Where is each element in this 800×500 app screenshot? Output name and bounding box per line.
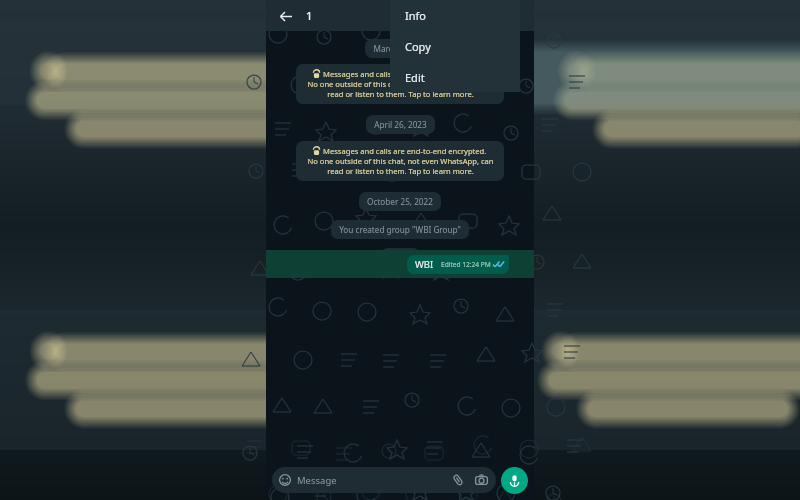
staticText: Copy <box>405 39 431 54</box>
button[interactable]: Message <box>279 467 489 493</box>
button[interactable]: Record voice message <box>501 467 528 494</box>
staticText: Messages and calls are end-to-end encryp… <box>323 69 487 79</box>
staticText: WBI <box>415 258 434 271</box>
button[interactable]: Edit <box>390 62 520 92</box>
staticText: Messages and calls are end-to-end encryp… <box>323 146 487 156</box>
staticText: April 26, 2023 <box>374 119 427 130</box>
button[interactable]: Copy <box>390 31 520 62</box>
staticText: October 25, 2022 <box>367 196 433 207</box>
button[interactable]: Back <box>276 7 294 25</box>
staticText: No one outside of this chat, not even Wh… <box>307 156 494 176</box>
staticText: Info <box>405 8 426 23</box>
button[interactable]: Camera <box>473 472 489 488</box>
staticText: March 5, 2024 <box>373 43 428 54</box>
button[interactable]: WBI <box>266 250 534 278</box>
staticText: Edit <box>405 70 425 85</box>
staticText: Today <box>389 252 412 263</box>
staticText: 1 <box>306 8 313 23</box>
staticText: Edited 12:24 PM <box>441 260 491 269</box>
button[interactable]: Info <box>390 0 520 31</box>
button[interactable]: Attach <box>450 472 466 488</box>
staticText: You created group "WBI Group" <box>339 224 461 235</box>
staticText: No one outside of this chat, not even Wh… <box>307 79 494 99</box>
staticText: Message <box>297 474 337 487</box>
